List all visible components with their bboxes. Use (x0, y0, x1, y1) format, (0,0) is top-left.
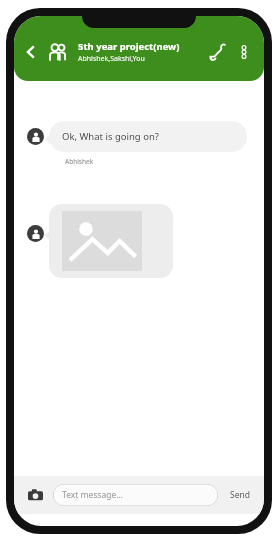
staticText: Ok, What is going on? (62, 130, 159, 143)
button[interactable]: Abhishek avatar (27, 128, 44, 145)
staticText: Text message... (62, 489, 124, 501)
button[interactable]: Back (20, 41, 42, 63)
button[interactable]: Text message... (53, 484, 218, 506)
button[interactable]: Abhishek avatar (27, 225, 44, 242)
button[interactable]: Photo attachment (49, 204, 173, 278)
staticText: Abhishek,Sakshi,You (78, 54, 145, 64)
button[interactable]: Ok, What is going on? (49, 121, 247, 152)
staticText: Abhishek (65, 157, 94, 166)
button[interactable]: 5th year project(new) (78, 40, 206, 64)
button[interactable]: Group members (44, 38, 72, 66)
button[interactable]: Send (224, 484, 256, 506)
button[interactable]: Call (206, 39, 232, 65)
staticText: Send (230, 489, 250, 501)
staticText: 5th year project(new) (78, 40, 180, 53)
button[interactable]: More options (232, 40, 256, 64)
button[interactable]: Camera (24, 484, 46, 506)
